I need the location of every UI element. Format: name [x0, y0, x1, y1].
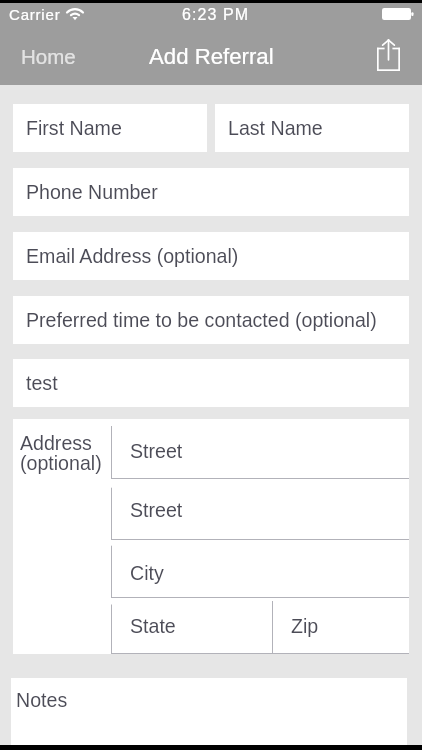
staticText: test [26, 372, 58, 394]
button[interactable]: Phone Number [13, 168, 409, 216]
button[interactable]: Email Address (optional) [13, 232, 409, 280]
staticText: Carrier [9, 6, 61, 23]
staticText: 6:23 PM [182, 6, 250, 24]
button[interactable]: Home [0, 25, 92, 85]
staticText: Street [130, 499, 183, 521]
staticText: City [130, 562, 164, 584]
button[interactable]: Preferred time to be contacted (optional… [13, 296, 409, 344]
staticText: First Name [26, 117, 122, 139]
staticText: Preferred time to be contacted (optional… [26, 309, 377, 331]
staticText: Home [21, 45, 76, 68]
staticText: Address (optional) [20, 432, 102, 474]
button[interactable]: State [111, 598, 272, 654]
button[interactable]: Notes [11, 678, 407, 750]
staticText: Notes [16, 689, 68, 711]
staticText: Phone Number [26, 181, 158, 203]
staticText: Zip [291, 615, 319, 637]
button[interactable]: Street [111, 419, 409, 479]
staticText: Add Referral [149, 44, 274, 69]
button[interactable]: Zip [272, 598, 409, 654]
staticText: Last Name [228, 117, 323, 139]
button[interactable]: Last Name [215, 104, 409, 152]
staticText: State [130, 615, 176, 637]
button[interactable]: First Name [13, 104, 207, 152]
button[interactable]: Street [111, 479, 409, 540]
button[interactable]: test [13, 359, 409, 407]
button[interactable]: City [111, 540, 409, 598]
staticText: Street [130, 440, 183, 462]
staticText: Email Address (optional) [26, 245, 239, 267]
button[interactable]: Share [363, 25, 422, 85]
